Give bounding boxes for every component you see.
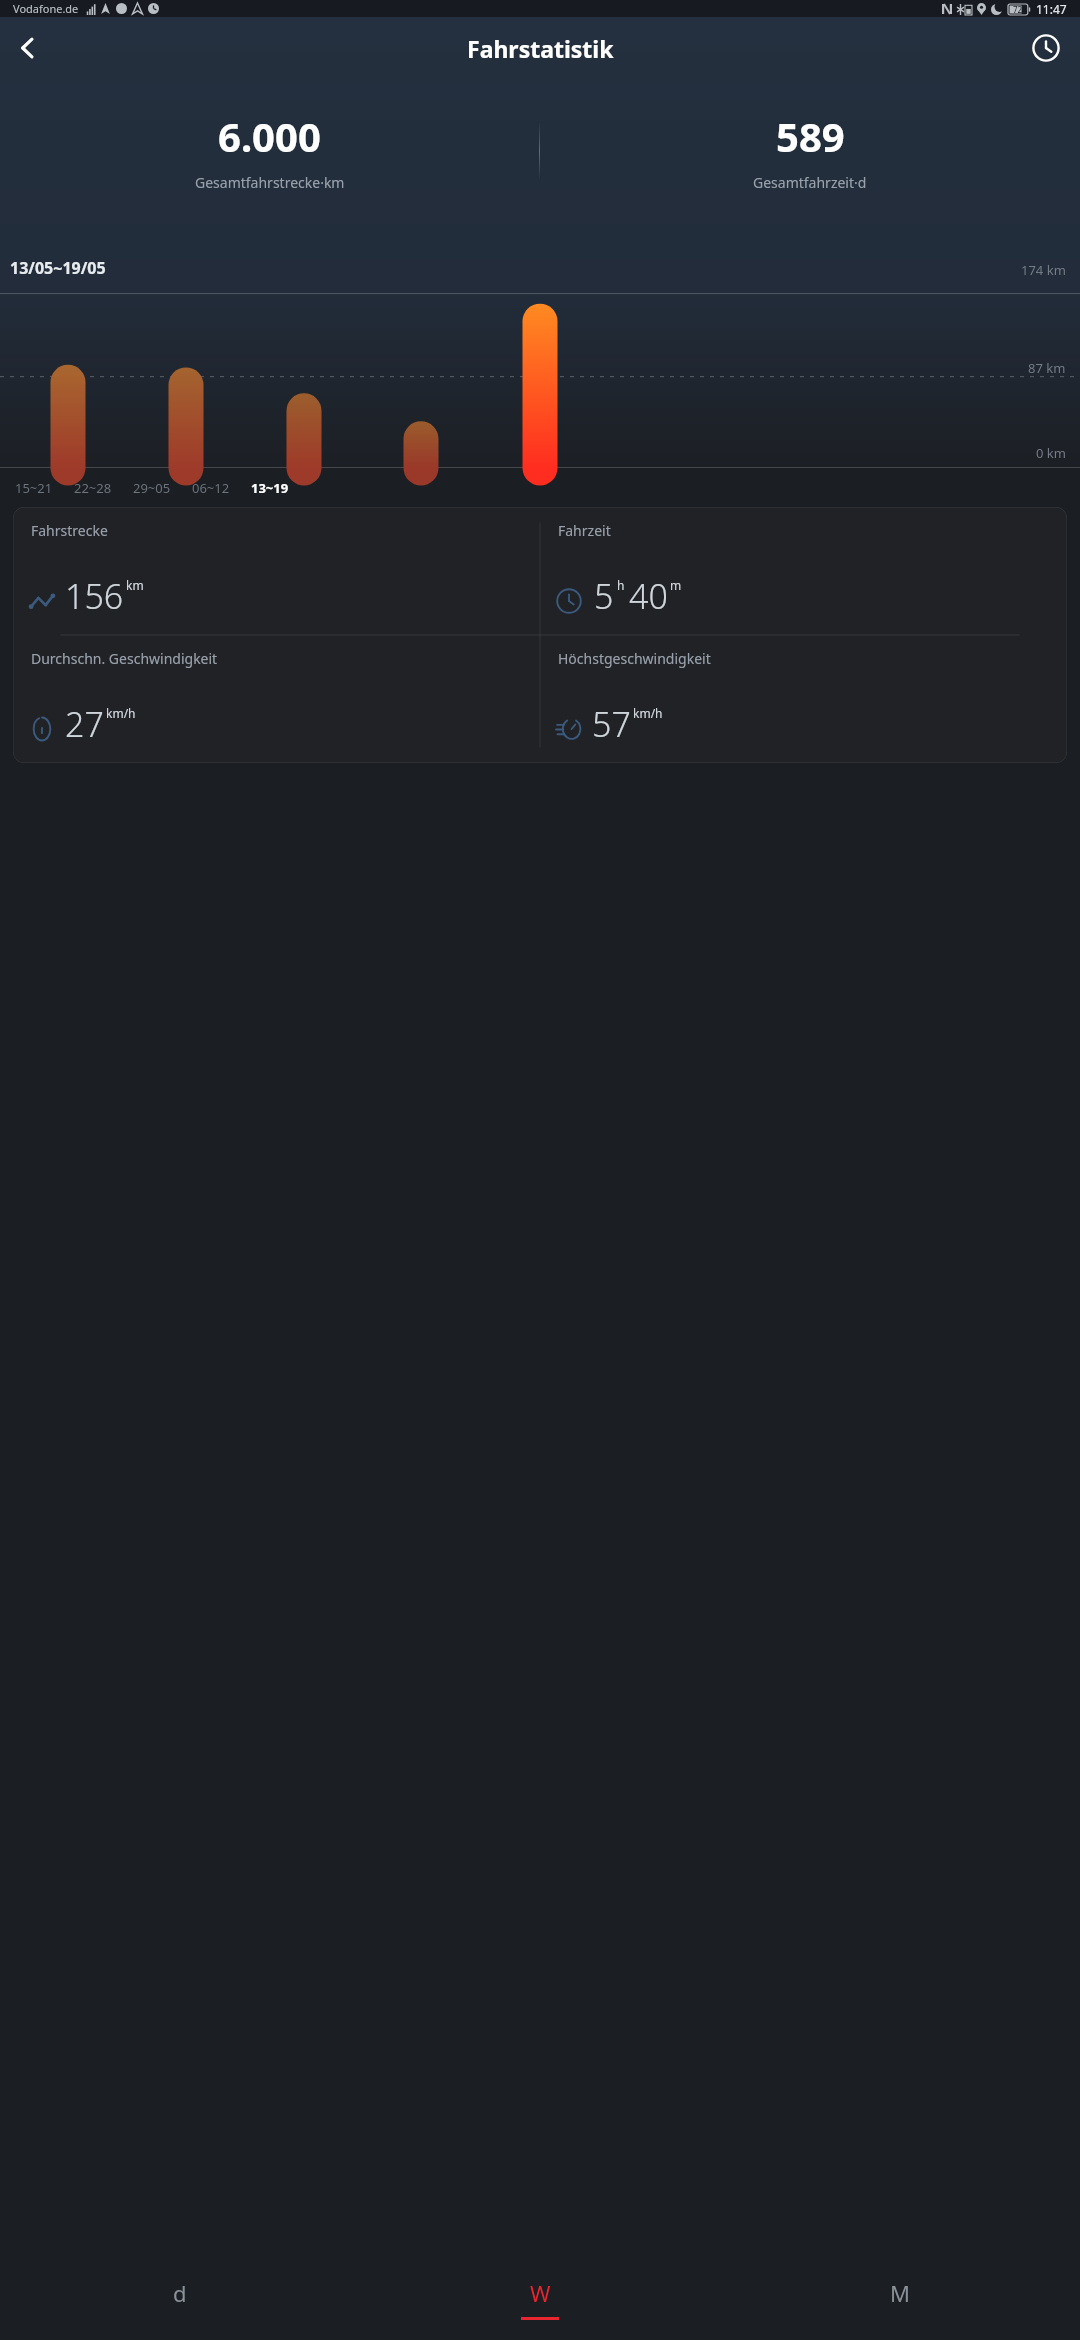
- staticText: 0 km: [1036, 444, 1066, 462]
- button[interactable]: Fahrzeit: [540, 507, 1067, 635]
- staticText: 15~21: [15, 479, 53, 497]
- button[interactable]: Fahrstrecke: [13, 507, 540, 635]
- staticText: 29~05: [133, 479, 171, 497]
- staticText: 72: [1013, 4, 1023, 15]
- staticText: h: [617, 577, 625, 593]
- staticText: Fahrstrecke: [31, 521, 108, 540]
- staticText: 13~19: [251, 479, 289, 497]
- staticText: Höchstgeschwindigkeit: [558, 649, 711, 668]
- staticText: 40: [629, 573, 668, 619]
- staticText: 5: [594, 573, 614, 619]
- staticText: km: [126, 577, 144, 593]
- button[interactable]: Höchstgeschwindigkeit: [540, 635, 1067, 763]
- staticText: 156: [65, 573, 124, 619]
- staticText: 13/05~19/05: [10, 257, 106, 279]
- staticText: Fahrstatistik: [467, 33, 614, 64]
- staticText: d: [173, 2278, 187, 2308]
- staticText: 06~12: [192, 479, 230, 497]
- button[interactable]: History: [1020, 22, 1072, 74]
- staticText: Gesamtfahrstrecke·km: [195, 173, 345, 192]
- button[interactable]: M: [720, 2262, 1080, 2336]
- staticText: 87 km: [1028, 359, 1066, 377]
- staticText: Gesamtfahrzeit·d: [753, 173, 867, 192]
- staticText: km/h: [633, 705, 663, 721]
- button[interactable]: W: [360, 2262, 720, 2336]
- staticText: m: [670, 577, 682, 593]
- button[interactable]: d: [0, 2262, 360, 2336]
- staticText: Fahrzeit: [558, 521, 611, 540]
- staticText: 174 km: [1021, 261, 1066, 279]
- button[interactable]: Back: [0, 20, 56, 76]
- button[interactable]: Durchschn. Geschwindigkeit: [13, 635, 540, 763]
- staticText: M: [890, 2278, 910, 2308]
- staticText: Vodafone.de: [13, 1, 79, 16]
- staticText: Durchschn. Geschwindigkeit: [31, 649, 218, 668]
- staticText: 589: [776, 109, 845, 163]
- staticText: 27: [65, 701, 104, 747]
- staticText: W: [530, 2278, 551, 2308]
- staticText: 6.000: [218, 109, 321, 163]
- staticText: 57: [592, 701, 631, 747]
- staticText: 22~28: [74, 479, 112, 497]
- staticText: 11:47: [1036, 1, 1067, 17]
- staticText: km/h: [106, 705, 136, 721]
